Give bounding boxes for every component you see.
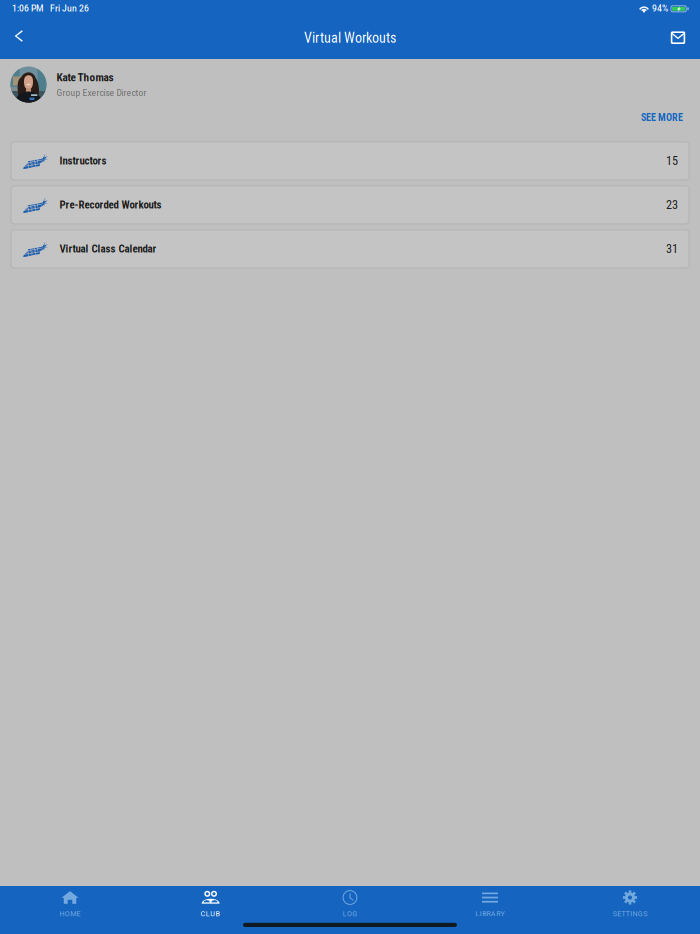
- staticText: Group Exercise Director: [56, 87, 146, 98]
- staticText: Kate Thomas: [56, 71, 113, 84]
- button[interactable]: SETTINGS: [560, 886, 700, 934]
- button[interactable]: Instructors: [11, 142, 689, 180]
- button[interactable]: Virtual Class Calendar: [11, 230, 689, 268]
- staticText: SETTINGS: [613, 909, 647, 918]
- button[interactable]: LOG: [280, 886, 420, 934]
- staticText: 94%: [652, 3, 668, 13]
- staticText: 15: [666, 154, 678, 168]
- button[interactable]: Messages: [659, 17, 697, 59]
- staticText: SEE MORE: [641, 111, 683, 123]
- staticText: HOME: [59, 909, 80, 918]
- staticText: LOG: [343, 909, 357, 918]
- staticText: 23: [666, 198, 678, 212]
- staticText: LIBRARY: [475, 909, 505, 918]
- staticText: Virtual Class Calendar: [59, 242, 156, 255]
- button[interactable]: CLUB: [140, 886, 280, 934]
- button[interactable]: SEE MORE: [629, 110, 695, 128]
- staticText: Pre-Recorded Workouts: [59, 198, 161, 211]
- staticText: Fri Jun 26: [50, 3, 89, 13]
- button[interactable]: Pre-Recorded Workouts: [11, 186, 689, 224]
- staticText: CLUB: [200, 909, 219, 918]
- staticText: Virtual Workouts: [304, 30, 396, 46]
- staticText: Instructors: [59, 154, 106, 167]
- button[interactable]: LIBRARY: [420, 886, 560, 934]
- staticText: 1:06 PM: [12, 3, 43, 13]
- staticText: 31: [666, 242, 678, 256]
- button[interactable]: Back: [1, 17, 39, 59]
- button[interactable]: HOME: [0, 886, 140, 934]
